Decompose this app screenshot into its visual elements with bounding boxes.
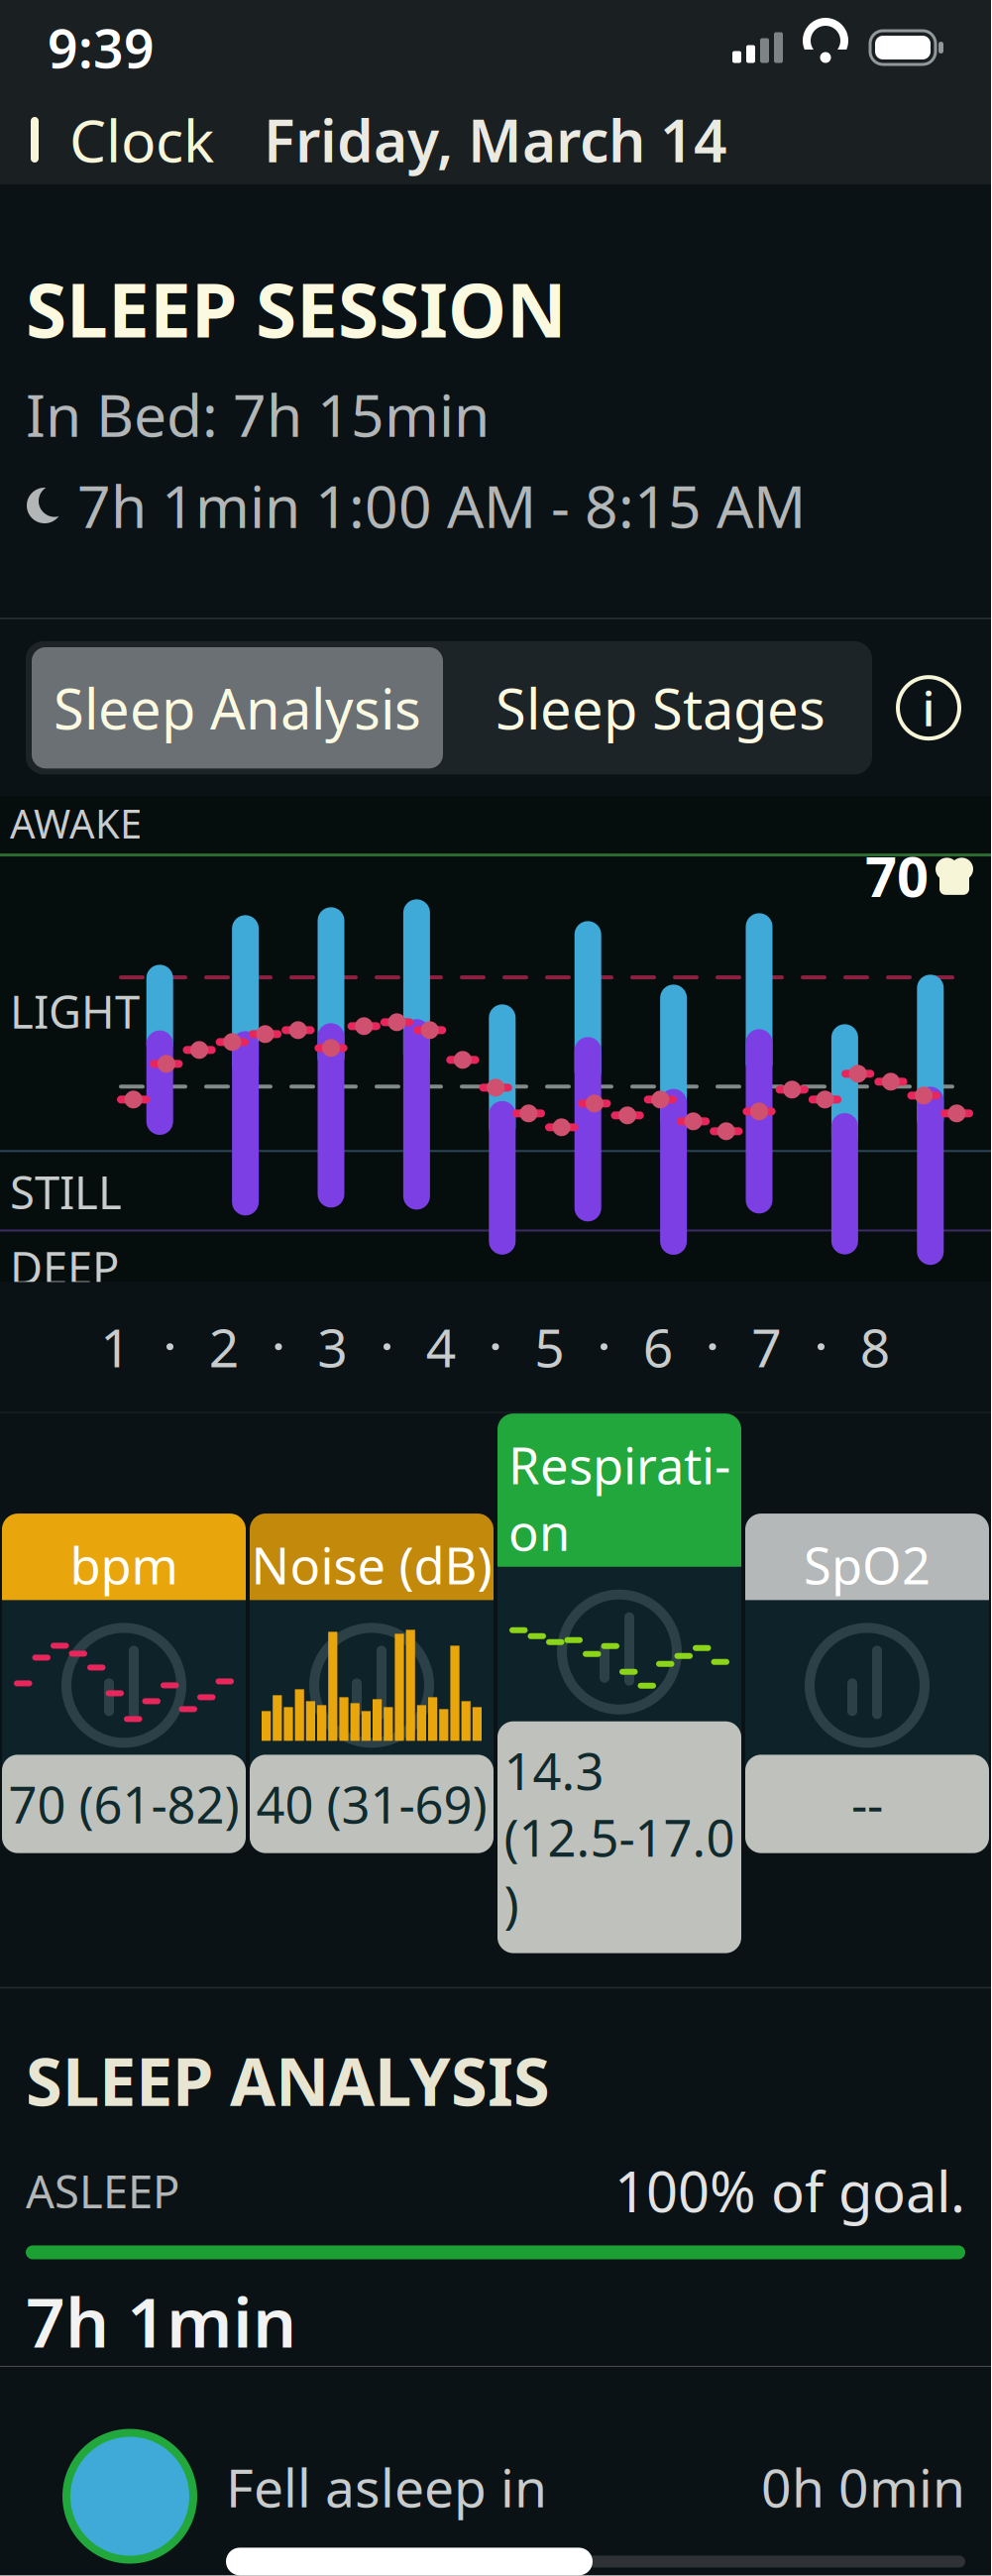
- staticText: ASLEEP: [26, 2161, 179, 2221]
- staticText: i: [922, 676, 935, 739]
- staticText: 5: [534, 1312, 565, 1382]
- staticText: 7h 1min 1:00 AM - 8:15 AM: [77, 467, 806, 544]
- staticText: Respiration: [508, 1431, 730, 1565]
- button[interactable]: Noise (dB): [250, 1514, 494, 1853]
- button[interactable]: Sleep Analysis: [26, 641, 449, 774]
- staticText: DEEP: [10, 1237, 119, 1297]
- staticText: Sleep Analysis: [54, 671, 421, 745]
- staticText: Sleep Stages: [496, 671, 826, 745]
- button[interactable]: SpO2: [745, 1514, 989, 1853]
- staticText: SpO2: [804, 1531, 931, 1598]
- staticText: Clock: [69, 101, 214, 178]
- staticText: 9:39: [48, 12, 155, 83]
- button[interactable]: Respiration: [497, 1414, 741, 1953]
- button[interactable]: Information: [892, 671, 965, 745]
- staticText: 1: [100, 1312, 131, 1382]
- staticText: 3: [317, 1312, 348, 1382]
- staticText: 100% of goal.: [614, 2154, 965, 2228]
- staticText: 8: [860, 1312, 891, 1382]
- staticText: SLEEP SESSION: [26, 260, 567, 358]
- staticText: Friday, March 14: [264, 101, 727, 178]
- staticText: 40 (31-69): [256, 1771, 487, 1837]
- staticText: --: [851, 1771, 883, 1837]
- staticText: 70 (61-82): [8, 1771, 239, 1837]
- button[interactable]: Clock: [0, 89, 214, 190]
- staticText: 6: [643, 1312, 674, 1382]
- staticText: STILL: [10, 1162, 122, 1222]
- staticText: 0h 0min: [761, 2452, 965, 2522]
- staticText: bpm: [70, 1531, 178, 1598]
- staticText: Fell asleep in: [226, 2452, 547, 2522]
- staticText: 2: [209, 1312, 240, 1382]
- staticText: In Bed: 7h 15min: [26, 376, 490, 453]
- staticText: SLEEP ANALYSIS: [26, 2036, 550, 2124]
- button[interactable]: Sleep Stages: [449, 641, 872, 774]
- staticText: LIGHT: [10, 981, 140, 1041]
- staticText: AWAKE: [10, 797, 142, 850]
- staticText: 14.3 (12.5-17.0): [504, 1737, 735, 1937]
- button[interactable]: bpm: [2, 1514, 246, 1853]
- staticText: 4: [426, 1312, 457, 1382]
- staticText: 7h 1min: [26, 2275, 296, 2366]
- staticText: 7: [751, 1312, 782, 1382]
- staticText: Noise (dB): [251, 1531, 492, 1598]
- staticText: 70: [865, 839, 929, 912]
